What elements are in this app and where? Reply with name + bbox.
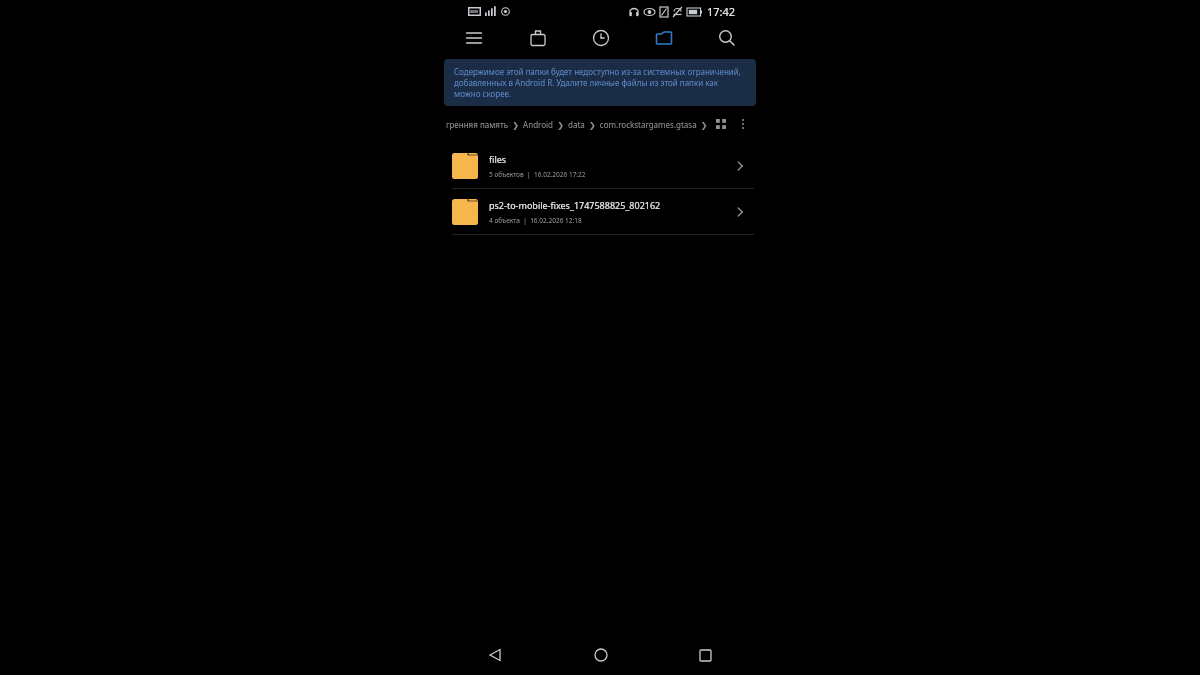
button[interactable]: Menu [442, 22, 506, 54]
button[interactable]: Home [548, 635, 653, 675]
staticText: гренняя память ❯ Android ❯ data ❯ com.ro… [446, 119, 710, 130]
button[interactable]: Files [632, 22, 695, 54]
button[interactable]: Recent [569, 22, 632, 54]
staticText: 4 объекта | 16.02.2026 12:18 [489, 216, 582, 225]
button[interactable]: files [442, 143, 758, 188]
button[interactable]: Search [695, 22, 758, 54]
button[interactable]: Cleanup [506, 22, 569, 54]
button[interactable]: Recents [653, 635, 758, 675]
staticText: 5 объектов | 16.02.2026 17:22 [489, 170, 586, 179]
button[interactable]: ps2-to-mobile-fixes_1747588825_802162 [442, 189, 758, 234]
staticText: files [489, 153, 507, 165]
staticText: Содержимое этой папки будет недоступно и… [454, 66, 746, 99]
button[interactable]: Содержимое этой папки будет недоступно и… [444, 59, 756, 106]
staticText: ps2-to-mobile-fixes_1747588825_802162 [489, 199, 661, 211]
staticText: 17:42 [707, 4, 736, 19]
button[interactable]: Back [442, 635, 548, 675]
button[interactable]: More options [732, 114, 754, 134]
button[interactable]: Grid view [710, 114, 732, 134]
